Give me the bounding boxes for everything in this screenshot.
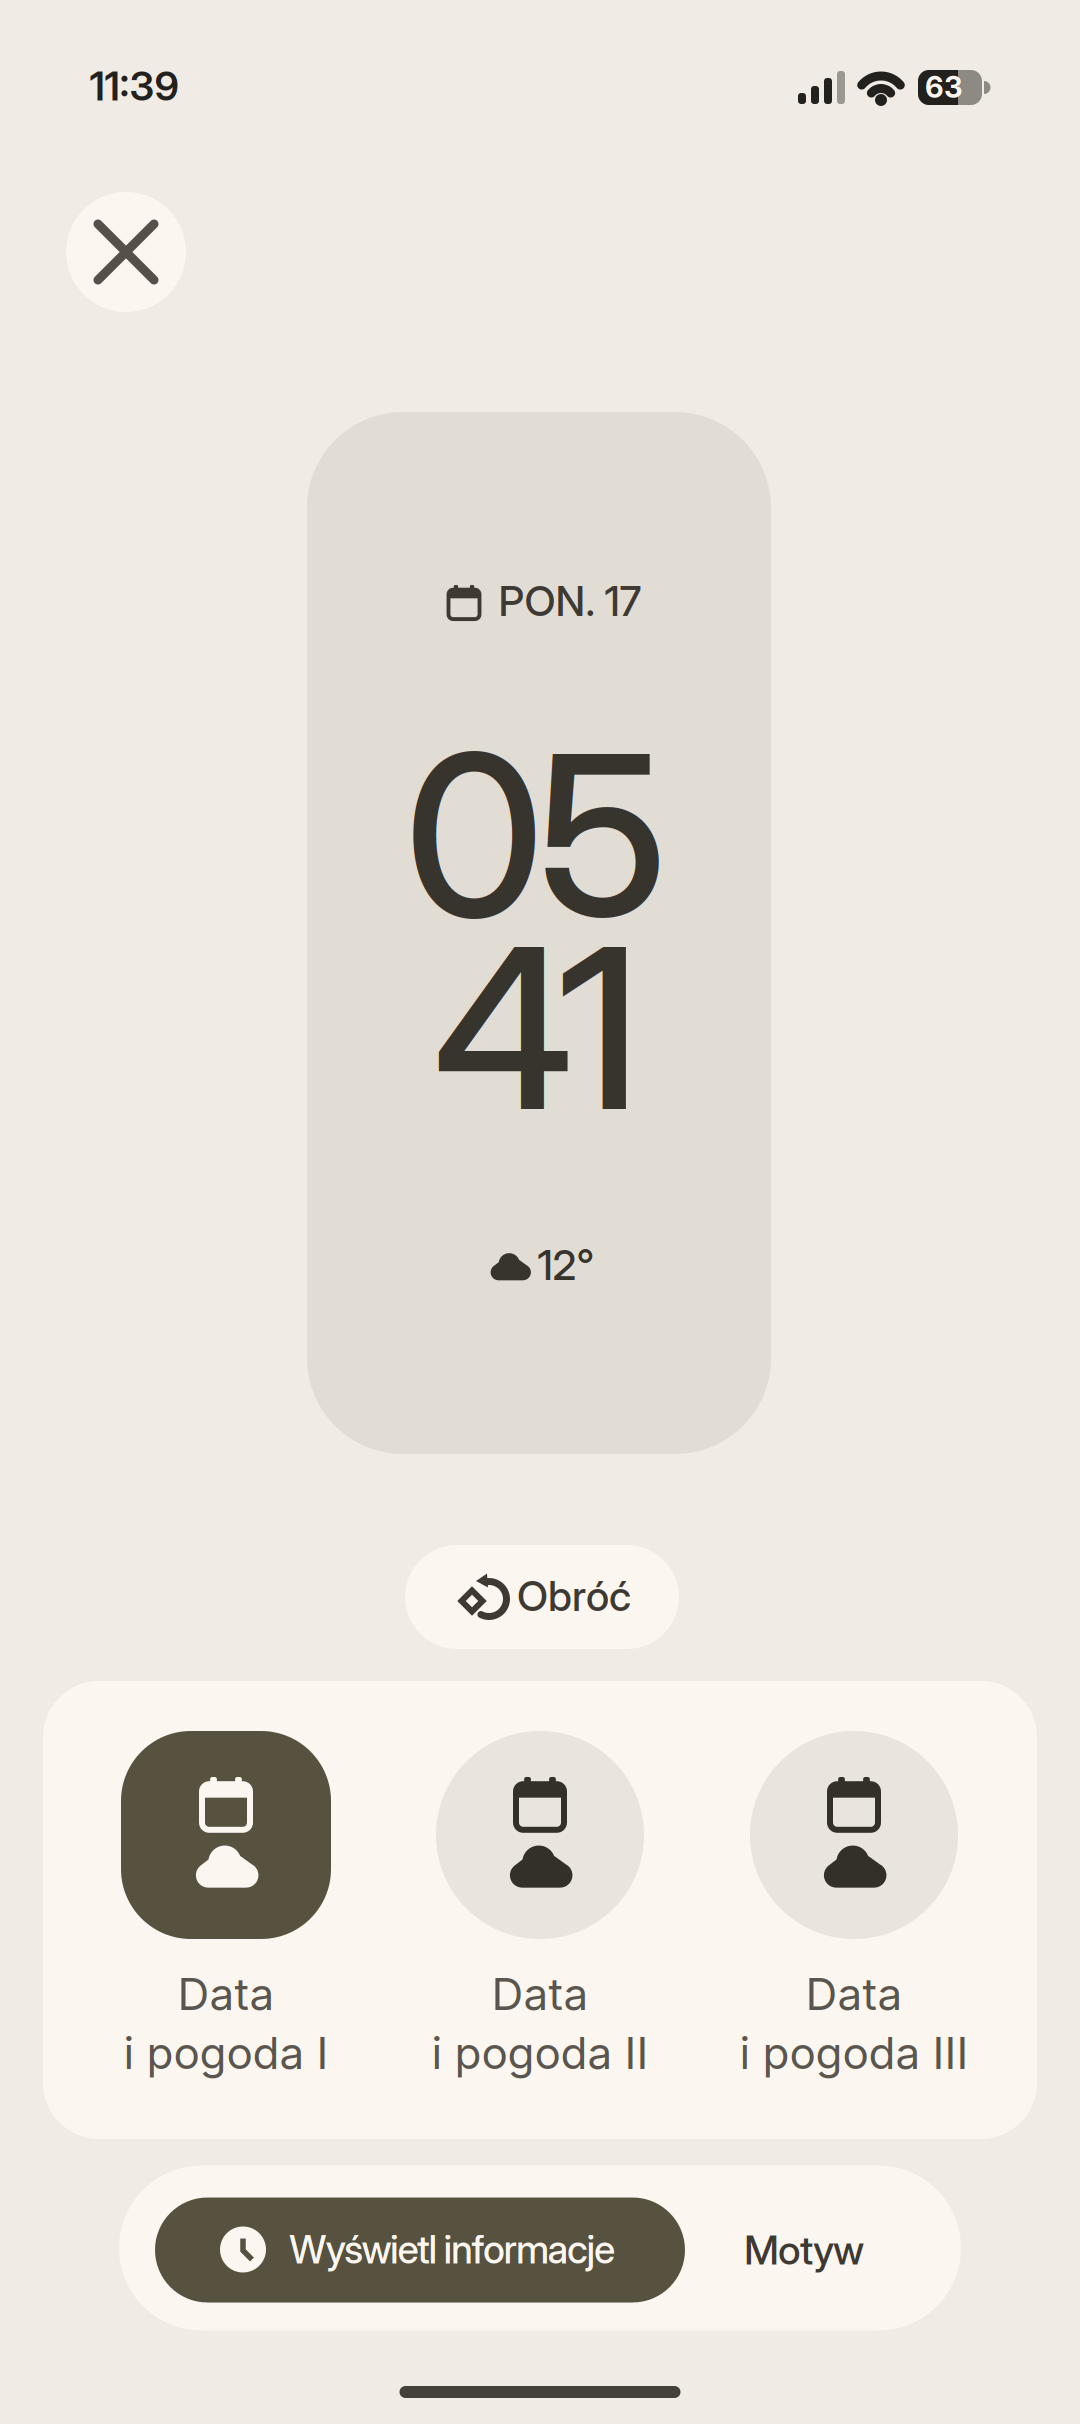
button[interactable]: Data: [96, 1731, 356, 2091]
staticText: PON. 17: [498, 576, 641, 626]
staticText: 63: [925, 69, 963, 105]
staticText: Obróć: [517, 1571, 631, 1621]
staticText: Wyświetl informacje: [289, 2226, 615, 2273]
button[interactable]: Motyw: [694, 2197, 914, 2302]
button[interactable]: Data: [410, 1731, 670, 2091]
staticText: 05: [404, 700, 667, 970]
staticText: Data: [177, 1967, 274, 2021]
staticText: 12°: [537, 1240, 594, 1290]
staticText: i pogoda I: [123, 2026, 328, 2080]
staticText: Data: [805, 1967, 902, 2021]
staticText: Motyw: [744, 2226, 864, 2274]
button[interactable]: Close: [66, 192, 186, 312]
button[interactable]: Obróć: [405, 1545, 679, 1649]
staticText: i pogoda III: [739, 2026, 968, 2080]
button[interactable]: Wyświetl informacje: [155, 2197, 685, 2302]
staticText: 41: [433, 893, 641, 1163]
staticText: 11:39: [89, 62, 178, 110]
staticText: Data: [491, 1967, 588, 2021]
staticText: i pogoda II: [431, 2026, 648, 2080]
button[interactable]: Data: [724, 1731, 984, 2091]
